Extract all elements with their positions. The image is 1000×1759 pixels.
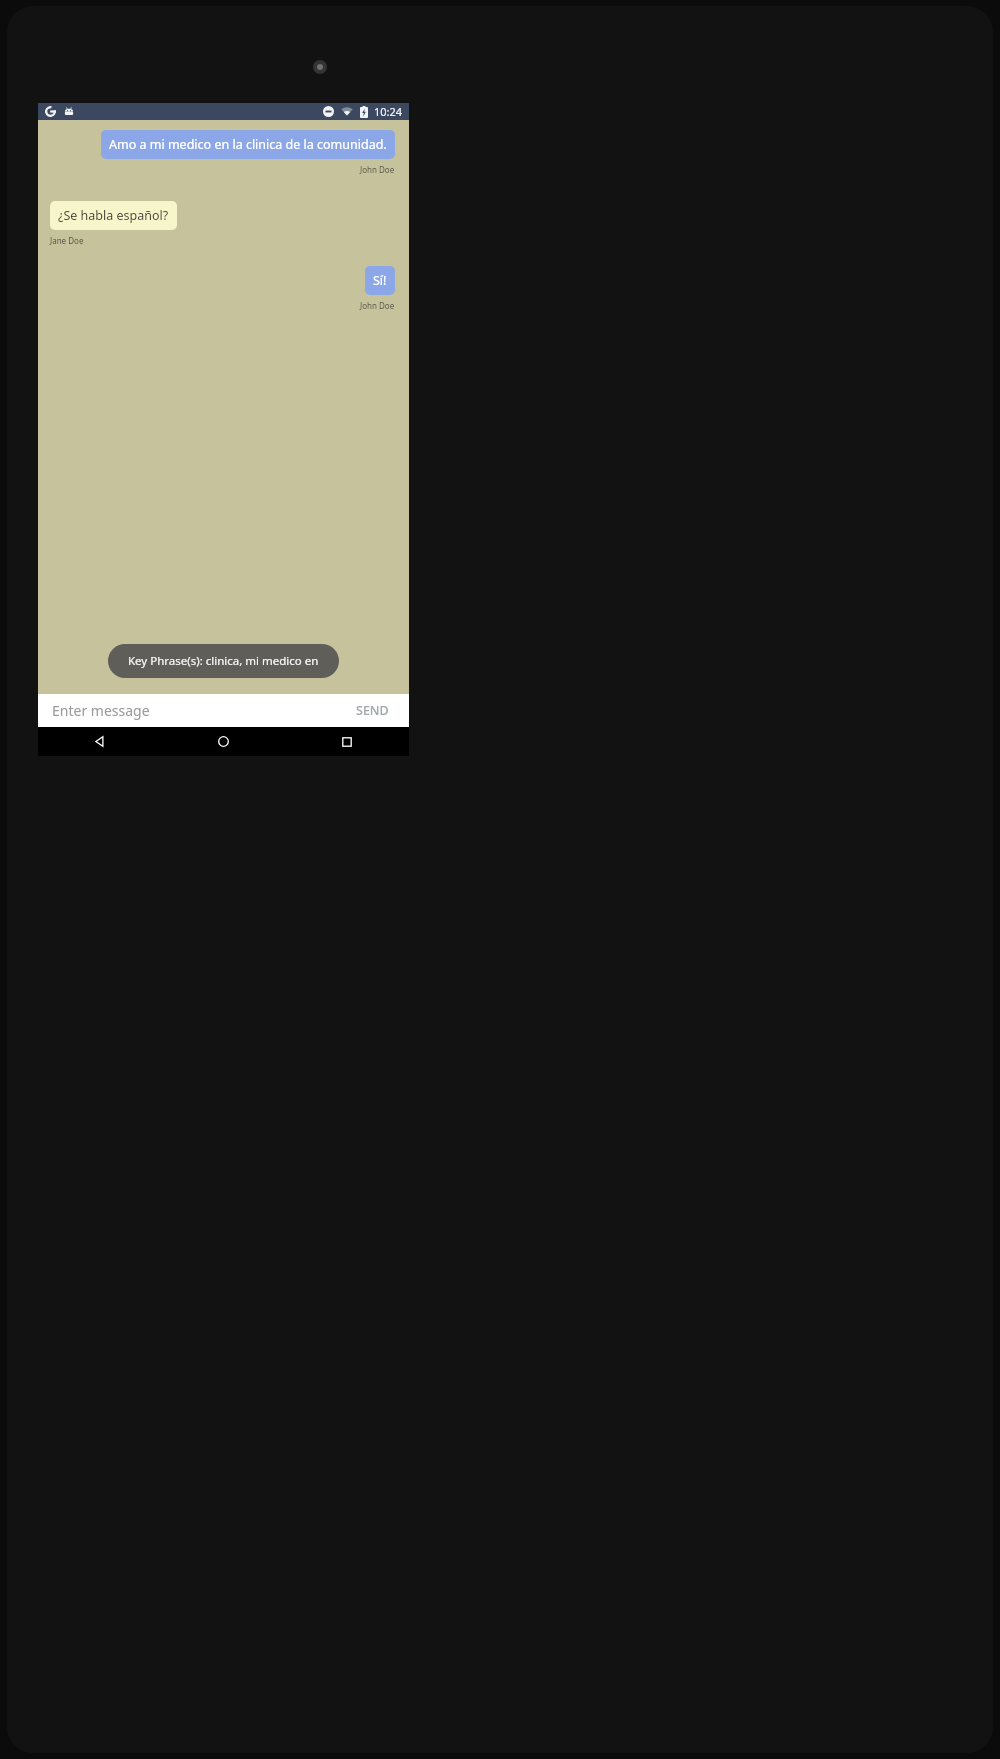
button[interactable]: Recent apps (285, 727, 409, 756)
button[interactable]: Back (38, 727, 161, 756)
staticText: SEND (356, 702, 389, 719)
staticText: Jane Doe (50, 235, 84, 246)
staticText: John Doe (360, 164, 395, 175)
staticText: 10:24 (374, 104, 403, 119)
staticText: Sí! (373, 272, 387, 289)
button[interactable]: Sí! (365, 266, 395, 295)
staticText: ¿Se habla español? (58, 207, 169, 224)
staticText: John Doe (360, 300, 395, 311)
button[interactable]: Amo a mi medico en la clinica de la comu… (101, 130, 395, 159)
staticText: Amo a mi medico en la clinica de la comu… (109, 136, 387, 153)
staticText: Key Phrase(s): clinica, mi medico en (128, 653, 319, 669)
staticText: Enter message (52, 701, 150, 720)
button[interactable]: SEND (352, 698, 393, 723)
button[interactable]: Home (161, 727, 285, 756)
button[interactable]: Enter message (52, 701, 352, 720)
button[interactable]: ¿Se habla español? (50, 201, 177, 230)
button[interactable]: Key Phrase(s): clinica, mi medico en (108, 644, 339, 678)
